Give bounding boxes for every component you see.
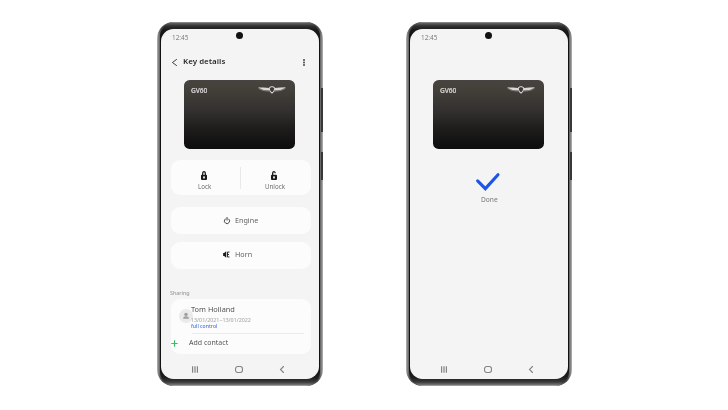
button[interactable]: Add contact	[171, 333, 311, 354]
button[interactable]: Tom Holland	[171, 299, 311, 332]
staticText: full control	[191, 323, 218, 330]
button[interactable]: More options	[298, 54, 310, 70]
staticText: 12:45	[172, 33, 189, 42]
staticText: 13/01/2021~13/01/2022	[191, 316, 251, 323]
button[interactable]: Back	[168, 54, 181, 70]
staticText: Horn	[235, 249, 253, 259]
button[interactable]: Back	[520, 363, 542, 376]
staticText: Engine	[235, 215, 259, 225]
button[interactable]: Back	[271, 363, 293, 376]
staticText: Done	[481, 195, 498, 204]
button[interactable]: Unlock	[241, 160, 311, 195]
staticText: Sharing	[170, 289, 190, 296]
button[interactable]: Recents	[184, 363, 206, 376]
button[interactable]: Home	[477, 363, 499, 376]
staticText: Unlock	[265, 182, 285, 190]
staticText: Key details	[183, 56, 226, 67]
button[interactable]: Horn	[171, 242, 311, 269]
staticText: Lock	[198, 182, 212, 190]
staticText: GV60	[440, 86, 457, 95]
staticText: Add contact	[189, 338, 229, 348]
button[interactable]: Engine	[171, 207, 311, 234]
button[interactable]: Lock	[171, 160, 240, 195]
staticText: GV60	[191, 86, 208, 95]
button[interactable]: Home	[228, 363, 250, 376]
button[interactable]: Recents	[433, 363, 455, 376]
staticText: 12:45	[421, 33, 438, 42]
staticText: Tom Holland	[191, 304, 235, 314]
